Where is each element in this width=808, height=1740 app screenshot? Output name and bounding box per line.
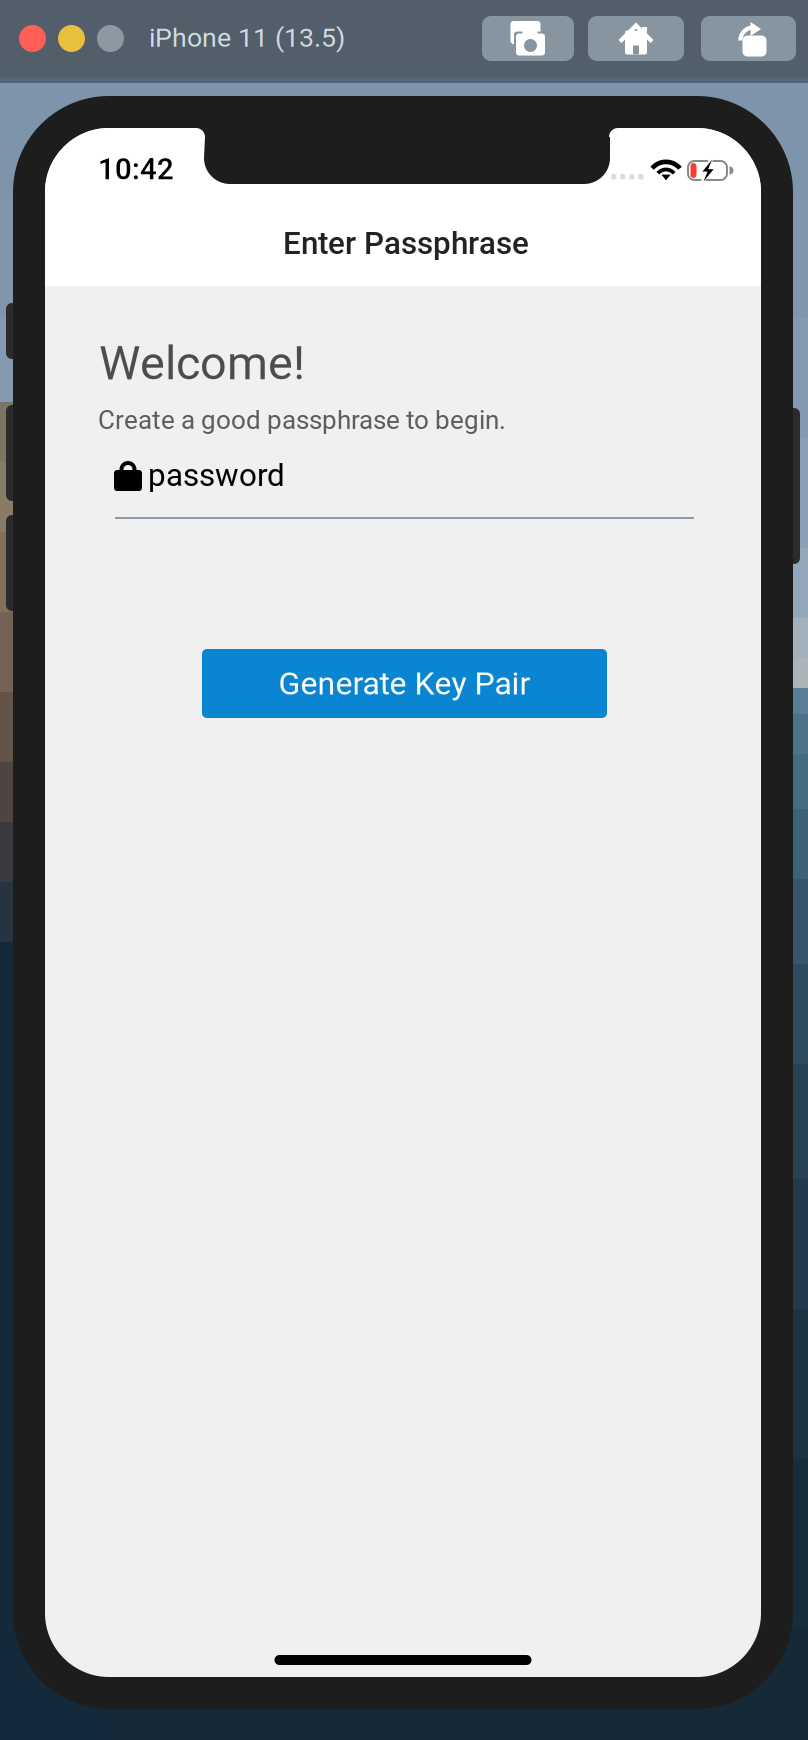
staticText: Generate Key Pair [278, 665, 530, 702]
button[interactable]: Home [588, 16, 684, 61]
staticText: Welcome! [99, 336, 305, 391]
button[interactable]: Share [701, 16, 796, 61]
staticText: password [148, 457, 285, 494]
button[interactable]: Screenshot [482, 16, 574, 61]
button[interactable]: Generate Key Pair [202, 649, 607, 718]
staticText: iPhone 11 (13.5) [149, 22, 345, 53]
button[interactable]: Minimise window [58, 25, 85, 52]
button[interactable]: Zoom window [97, 25, 124, 52]
staticText: Enter Passphrase [283, 225, 529, 262]
button[interactable]: Close window [19, 25, 46, 52]
staticText: 10:42 [98, 152, 174, 186]
staticText: Create a good passphrase to begin. [98, 405, 506, 435]
